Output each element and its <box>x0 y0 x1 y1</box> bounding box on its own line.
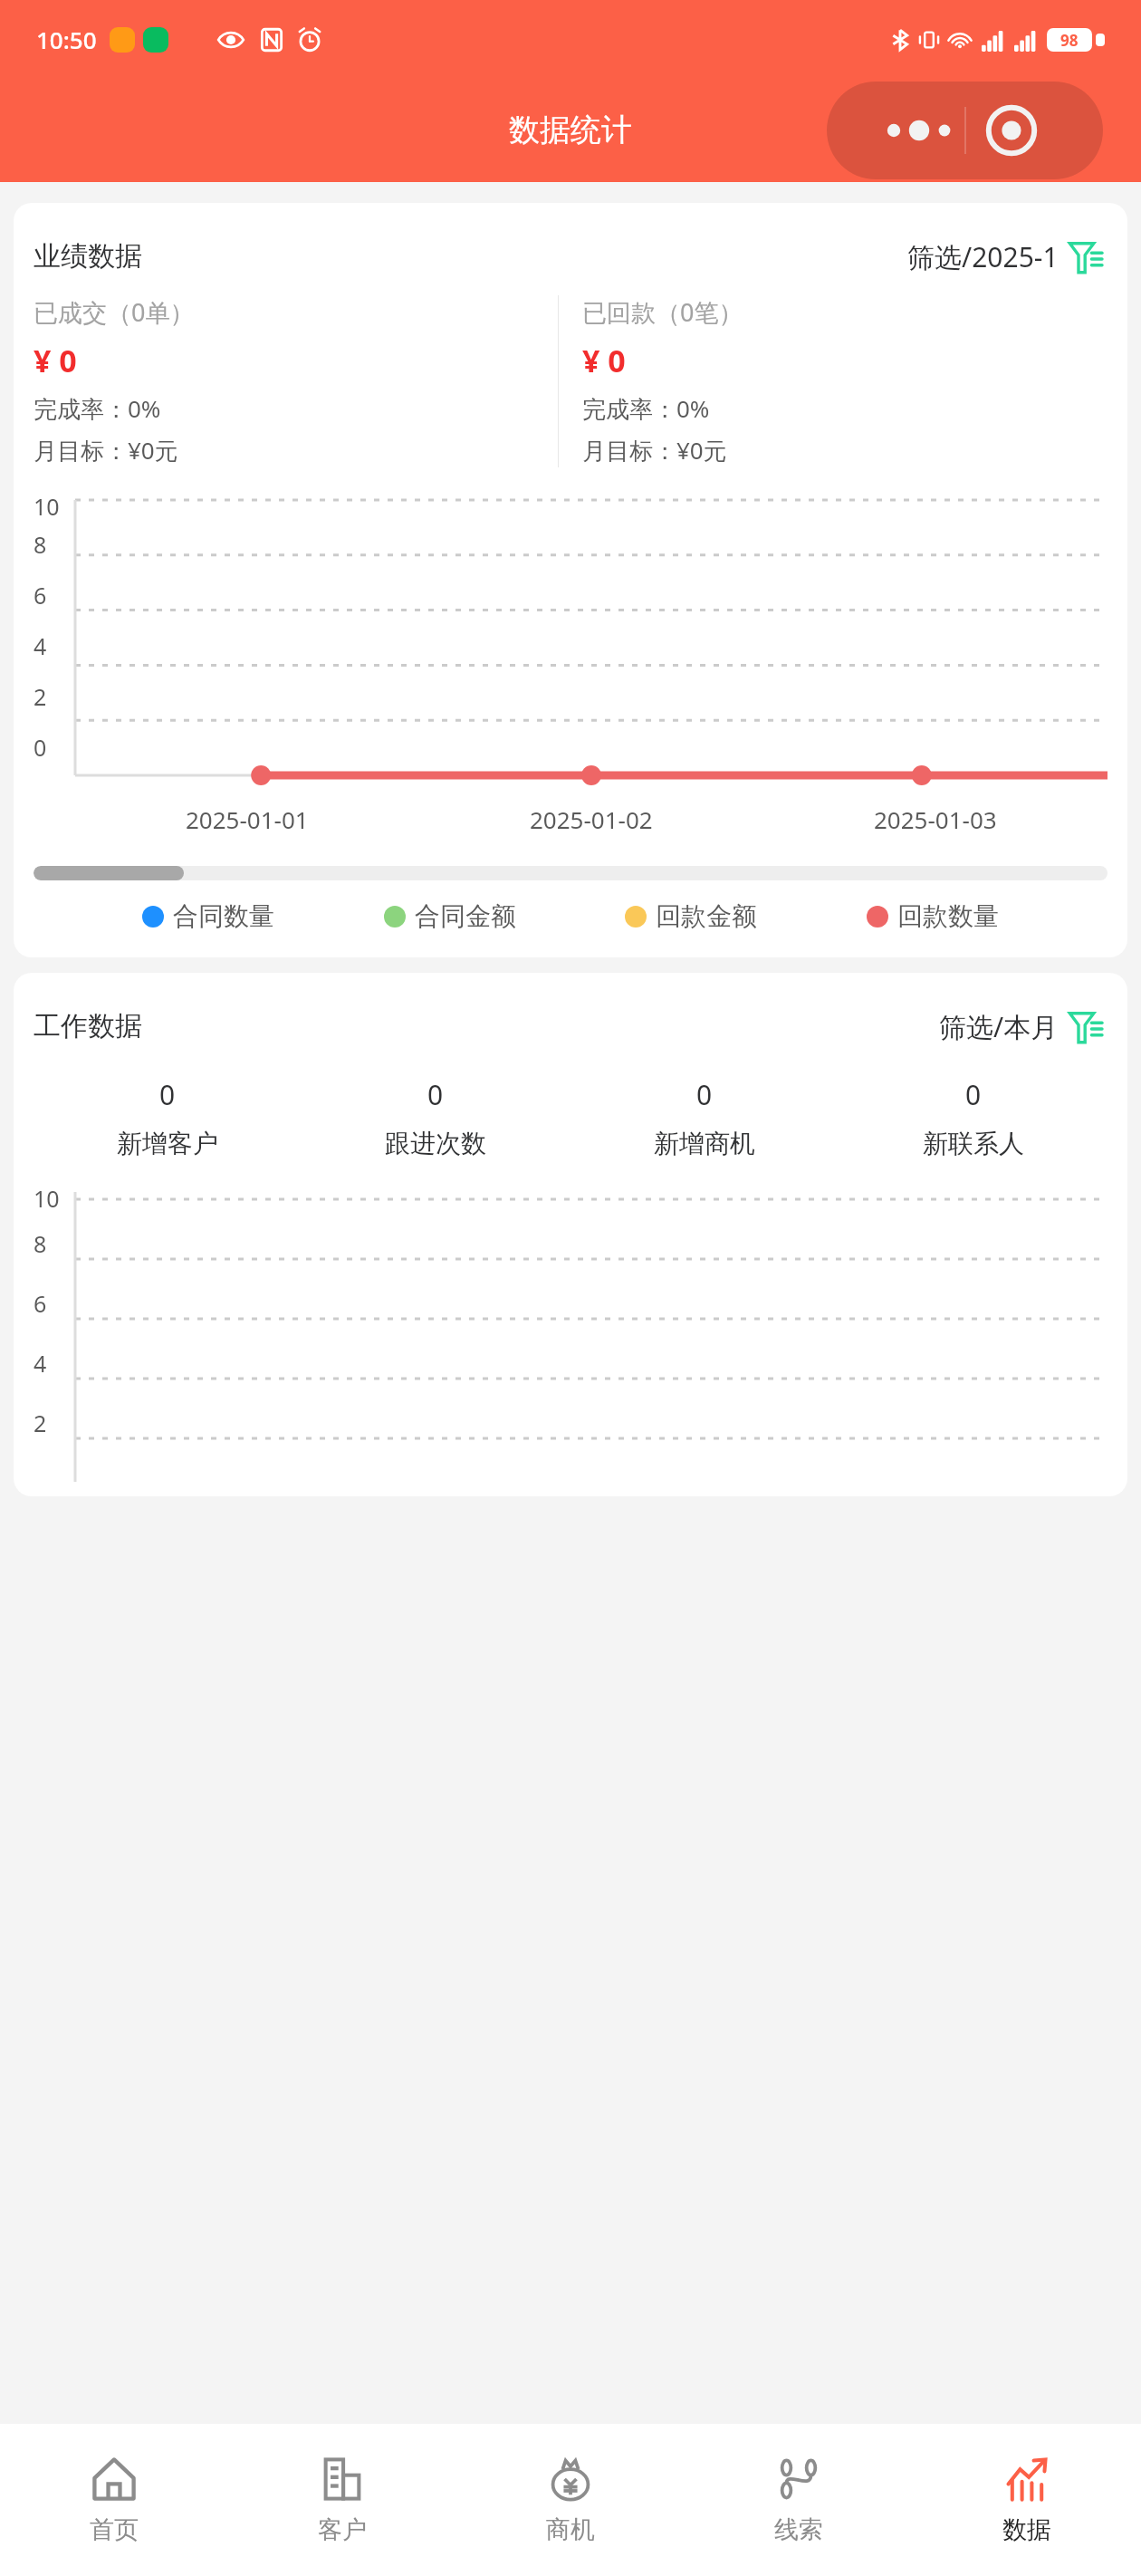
staticText: 数据统计 <box>509 111 632 149</box>
button[interactable]: 合同金额 <box>384 900 516 932</box>
staticText: 0 <box>696 1076 713 1113</box>
other: Filter <box>1068 1009 1104 1045</box>
button[interactable]: 回款金额 <box>625 900 757 932</box>
staticText: 新联系人 <box>923 1128 1024 1159</box>
staticText: 首页 <box>90 2514 139 2545</box>
staticText: 0 <box>159 1076 176 1113</box>
staticText: 完成率：0% <box>34 392 161 425</box>
staticText: ¥ 0 <box>34 340 77 381</box>
staticText: 2 <box>34 681 47 712</box>
button[interactable]: 合同数量 <box>142 900 274 932</box>
button[interactable]: 商机 <box>456 2424 685 2576</box>
other: More <box>874 112 964 149</box>
button[interactable]: 0 <box>570 1076 839 1159</box>
staticText: 2025-01-02 <box>530 803 653 835</box>
staticText: 数据 <box>1002 2514 1051 2545</box>
staticText: 2025-01-03 <box>874 803 997 835</box>
staticText: ¥ 0 <box>582 340 626 381</box>
staticText: 98 <box>1060 30 1079 51</box>
staticText: 月目标：¥0元 <box>582 434 727 466</box>
staticText: 4 <box>34 630 47 661</box>
staticText: 8 <box>34 1228 47 1259</box>
staticText: 筛选/本月 <box>939 1008 1059 1045</box>
button[interactable]: 0 <box>302 1076 570 1159</box>
staticText: 回款数量 <box>897 900 999 932</box>
staticText: 新增商机 <box>654 1128 755 1159</box>
staticText: 客户 <box>318 2514 367 2545</box>
staticText: 线索 <box>774 2514 823 2545</box>
button[interactable]: 数据 <box>913 2424 1141 2576</box>
button[interactable]: 0 <box>34 1076 302 1159</box>
staticText: 10 <box>34 491 60 522</box>
button[interactable]: 筛选/本月 <box>935 1003 1107 1051</box>
other: Filter <box>1068 239 1104 275</box>
staticText: 工作数据 <box>34 1009 142 1043</box>
button[interactable]: More <box>827 82 1103 179</box>
staticText: 合同金额 <box>415 900 516 932</box>
button[interactable]: 线索 <box>685 2424 913 2576</box>
staticText: 已回款（0笔） <box>582 295 743 329</box>
button[interactable]: 筛选/2025-1 <box>904 233 1107 281</box>
other: Close <box>966 103 1057 158</box>
staticText: 跟进次数 <box>385 1128 486 1159</box>
staticText: 6 <box>34 1288 47 1319</box>
button[interactable]: 0 <box>839 1076 1107 1159</box>
staticText: 回款金额 <box>656 900 757 932</box>
button[interactable]: 客户 <box>228 2424 456 2576</box>
staticText: 4 <box>34 1348 47 1379</box>
staticText: 10 <box>34 1183 60 1214</box>
staticText: 月目标：¥0元 <box>34 434 178 466</box>
staticText: 2025-01-01 <box>186 803 309 835</box>
staticText: 业绩数据 <box>34 239 142 274</box>
staticText: 0 <box>34 732 47 763</box>
staticText: 新增客户 <box>117 1128 218 1159</box>
staticText: 8 <box>34 529 47 560</box>
staticText: 0 <box>427 1076 444 1113</box>
button[interactable]: 回款数量 <box>867 900 999 932</box>
staticText: 已成交（0单） <box>34 295 195 329</box>
staticText: 筛选/2025-1 <box>907 238 1059 275</box>
staticText: 商机 <box>546 2514 595 2545</box>
staticText: 完成率：0% <box>582 392 710 425</box>
staticText: 0 <box>965 1076 982 1113</box>
staticText: 2 <box>34 1408 47 1438</box>
staticText: 10:50 <box>36 24 97 55</box>
staticText: 合同数量 <box>173 900 274 932</box>
staticText: 6 <box>34 580 47 610</box>
button[interactable]: 首页 <box>0 2424 228 2576</box>
